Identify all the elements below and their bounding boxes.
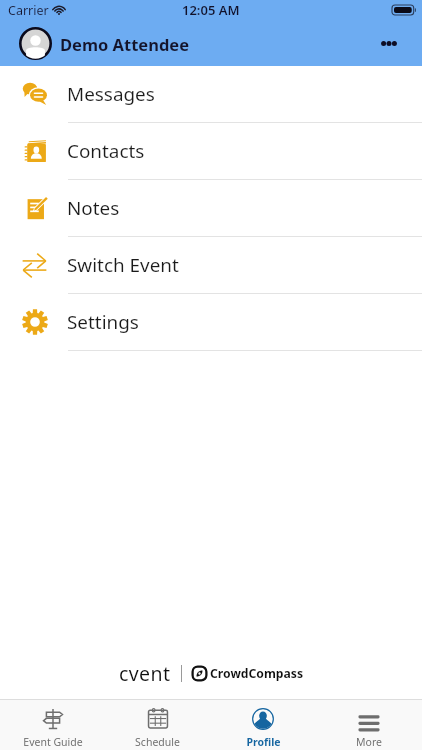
- staticText: 12:05 AM: [182, 1, 240, 19]
- staticText: Settings: [67, 309, 139, 335]
- staticText: More: [356, 735, 382, 749]
- staticText: Carrier: [8, 2, 49, 19]
- button[interactable]: Event Guide: [0, 699, 105, 750]
- button[interactable]: Switch Event: [0, 237, 422, 294]
- staticText: Switch Event: [67, 252, 179, 278]
- button[interactable]: Settings: [0, 294, 422, 351]
- button[interactable]: Notes: [0, 180, 422, 237]
- button[interactable]: Messages: [0, 66, 422, 123]
- staticText: Schedule: [135, 735, 180, 749]
- button[interactable]: More: [316, 699, 422, 750]
- button[interactable]: Schedule: [105, 699, 210, 750]
- button[interactable]: More options: [367, 21, 411, 65]
- staticText: Contacts: [67, 138, 145, 164]
- staticText: cvent: [119, 660, 171, 686]
- staticText: Messages: [67, 81, 155, 107]
- staticText: Demo Attendee: [60, 33, 190, 55]
- button[interactable]: Profile: [210, 699, 316, 750]
- staticText: CrowdCompass: [210, 665, 304, 682]
- staticText: Notes: [67, 195, 120, 221]
- staticText: Profile: [246, 735, 281, 749]
- staticText: Event Guide: [23, 735, 83, 749]
- button[interactable]: Contacts: [0, 123, 422, 180]
